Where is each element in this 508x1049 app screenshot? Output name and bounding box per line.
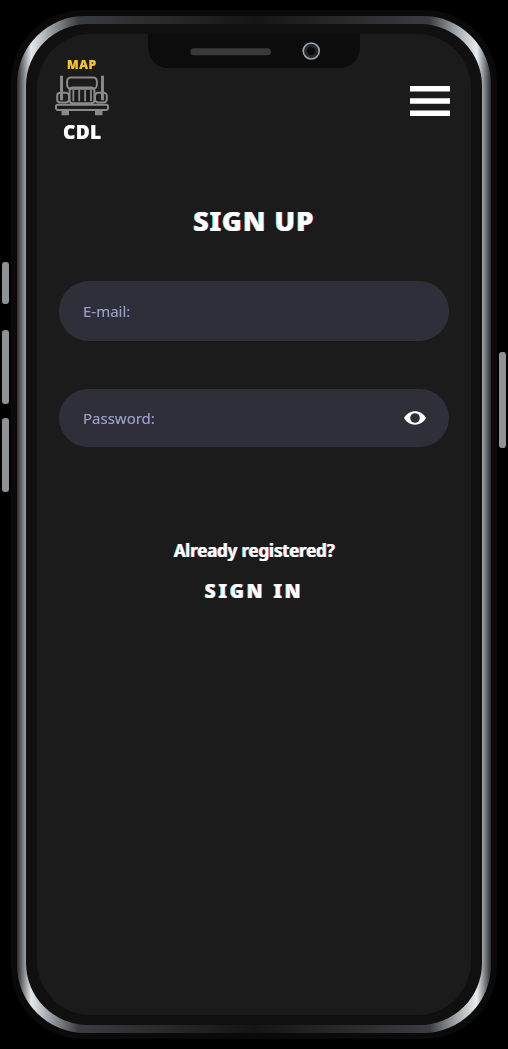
staticText: SIGN UP <box>193 202 315 239</box>
button[interactable]: Password: <box>59 389 449 447</box>
staticText: CDL <box>63 119 102 142</box>
staticText: SIGN IN <box>205 578 304 604</box>
button[interactable]: Open navigation menu <box>407 78 453 124</box>
button[interactable]: SIGN IN <box>191 574 318 608</box>
button[interactable]: MAP CDL logo <box>51 56 113 142</box>
button[interactable]: Show password <box>397 400 433 436</box>
staticText: Password: <box>83 408 155 428</box>
button[interactable]: E-mail: <box>59 281 449 341</box>
staticText: SIGN IN <box>204 578 303 604</box>
staticText: Already registered? <box>174 539 335 562</box>
staticText: MAP <box>67 56 97 72</box>
staticText: SIGN UP <box>194 202 316 239</box>
staticText: E-mail: <box>83 301 131 321</box>
staticText: SIGN UP <box>192 202 314 239</box>
staticText: SIGN IN <box>206 578 305 604</box>
staticText: Already registered? <box>175 539 336 562</box>
staticText: Already registered? <box>173 539 334 562</box>
